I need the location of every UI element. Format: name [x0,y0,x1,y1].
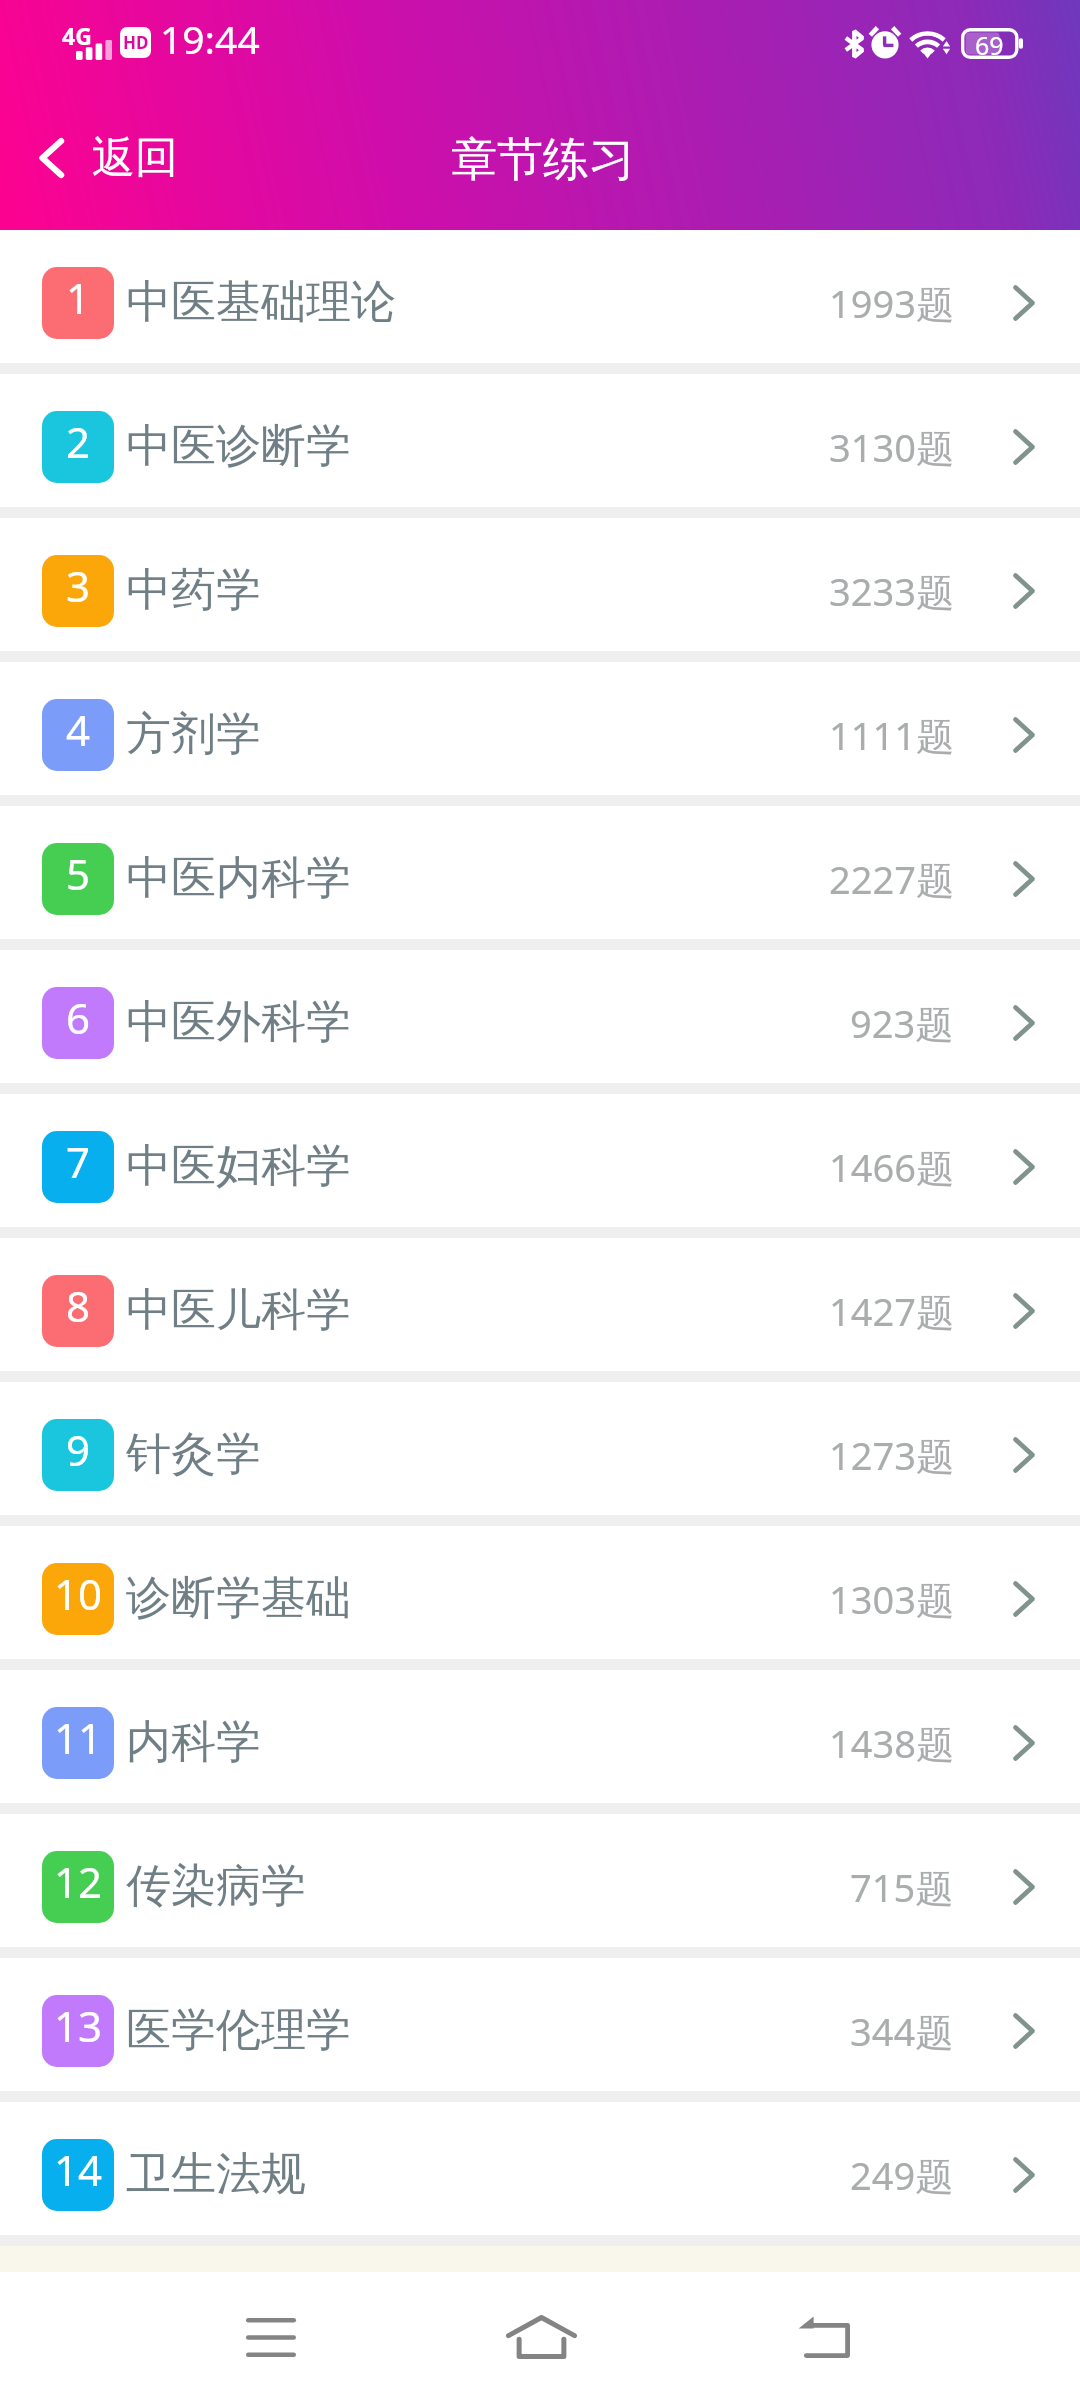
staticText: 249题 [850,2149,954,2201]
staticText: 69 [975,28,1004,59]
button[interactable]: 7 [0,1094,1080,1227]
staticText: 1303题 [829,1573,954,1625]
staticText: 6 [66,989,91,1046]
button[interactable]: 12 [0,1814,1080,1947]
staticText: 中医外科学 [126,994,351,1051]
staticText: 923题 [850,997,954,1049]
staticText: 2227题 [829,853,954,905]
staticText: 13 [54,1997,103,2054]
button[interactable]: 14 [0,2102,1080,2235]
button[interactable]: 5 [0,806,1080,939]
staticText: 10 [54,1565,103,1622]
staticText: 3130题 [829,421,954,473]
staticText: 11 [54,1709,103,1766]
staticText: 3233题 [829,565,954,617]
staticText: 3 [66,557,91,614]
staticText: 中药学 [126,562,261,619]
staticText: 针灸学 [126,1426,261,1483]
staticText: 14 [54,2141,103,2198]
staticText: 9 [66,1421,91,1478]
staticText: 卫生法规 [126,2146,306,2203]
button[interactable]: 9 [0,1382,1080,1515]
staticText: 1273题 [829,1429,954,1481]
button[interactable]: 6 [0,950,1080,1083]
button[interactable]: 3 [0,518,1080,651]
staticText: 344题 [850,2005,954,2057]
button[interactable]: Home [481,2282,601,2392]
staticText: 中医诊断学 [126,418,351,475]
button[interactable]: 1 [0,230,1080,363]
staticText: 中医儿科学 [126,1282,351,1339]
staticText: 返回 [92,131,178,185]
staticText: 1 [66,269,91,326]
staticText: 19:44 [160,12,260,65]
staticText: 1111题 [829,709,954,761]
staticText: 1466题 [829,1141,954,1193]
button[interactable]: 返回 [0,110,208,206]
staticText: 8 [66,1277,91,1334]
button[interactable]: Back [764,2282,884,2392]
staticText: 1438题 [829,1717,954,1769]
staticText: 章节练习 [451,131,635,189]
staticText: 内科学 [126,1714,261,1771]
button[interactable]: 2 [0,374,1080,507]
staticText: 1993题 [829,277,954,329]
staticText: 4 [66,701,91,758]
button[interactable]: 13 [0,1958,1080,2091]
staticText: 中医内科学 [126,850,351,907]
button[interactable]: Recent apps [211,2282,331,2392]
button[interactable]: 8 [0,1238,1080,1371]
staticText: 中医妇科学 [126,1138,351,1195]
staticText: 715题 [850,1861,954,1913]
staticText: 方剂学 [126,706,261,763]
staticText: 2 [66,413,91,470]
staticText: 12 [54,1853,103,1910]
staticText: 5 [66,845,91,902]
staticText: 4G [62,20,92,51]
staticText: 医学伦理学 [126,2002,351,2059]
staticText: 1427题 [829,1285,954,1337]
staticText: 中医基础理论 [126,274,396,331]
staticText: 诊断学基础 [126,1570,351,1627]
button[interactable]: 11 [0,1670,1080,1803]
button[interactable]: 4 [0,662,1080,795]
button[interactable]: 10 [0,1526,1080,1659]
staticText: 传染病学 [126,1858,306,1915]
staticText: HD [123,31,149,54]
staticText: 7 [66,1133,91,1190]
